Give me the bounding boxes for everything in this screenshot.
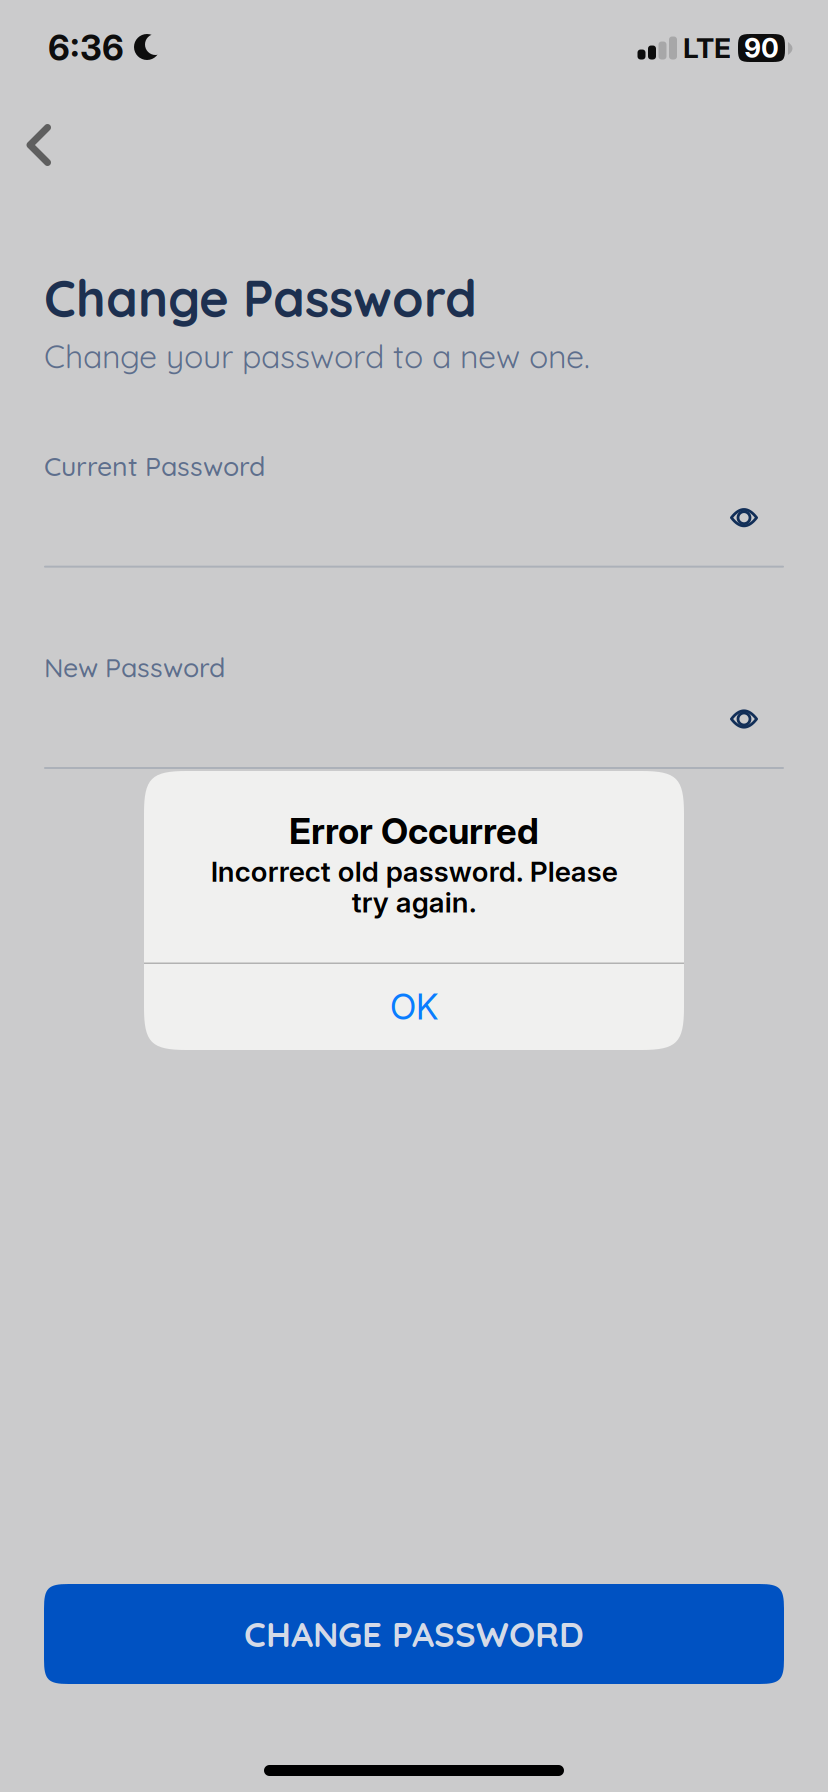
staticText: Incorrect old password. Please try again… bbox=[210, 855, 617, 919]
staticText: New Password bbox=[44, 651, 225, 684]
staticText: 6:36 bbox=[48, 27, 124, 69]
staticText: Change Password bbox=[44, 266, 477, 329]
button[interactable]: Back bbox=[0, 96, 78, 166]
staticText: LTE bbox=[683, 31, 731, 65]
button[interactable]: OK bbox=[144, 964, 684, 1050]
button[interactable]: Show password bbox=[699, 694, 789, 744]
staticText: OK bbox=[390, 986, 438, 1028]
staticText: Change your password to a new one. bbox=[44, 336, 590, 376]
staticText: 90 bbox=[744, 32, 779, 64]
staticText: CHANGE PASSWORD bbox=[244, 1612, 584, 1656]
staticText: Error Occurred bbox=[289, 809, 539, 853]
button[interactable]: CHANGE PASSWORD bbox=[44, 1584, 784, 1684]
button[interactable]: Show password bbox=[699, 493, 789, 543]
staticText: Current Password bbox=[44, 449, 265, 483]
